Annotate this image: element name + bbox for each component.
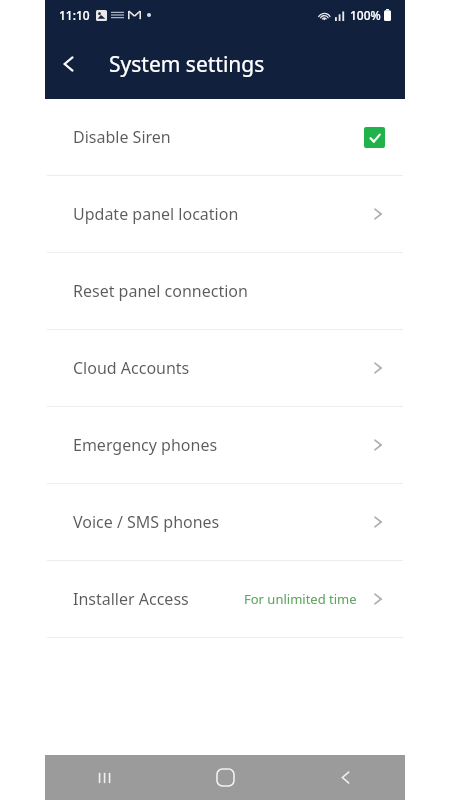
button[interactable]: Recent apps bbox=[45, 755, 165, 800]
staticText: System settings bbox=[109, 50, 265, 79]
staticText: Installer Access bbox=[73, 588, 189, 610]
staticText: For unlimited time bbox=[244, 590, 357, 608]
button[interactable]: Voice / SMS phones bbox=[45, 484, 405, 560]
staticText: Reset panel connection bbox=[73, 280, 248, 302]
button[interactable]: Back bbox=[45, 34, 93, 94]
button[interactable]: Home bbox=[165, 755, 285, 800]
staticText: Voice / SMS phones bbox=[73, 511, 220, 533]
staticText: Update panel location bbox=[73, 203, 239, 225]
button[interactable]: Reset panel connection bbox=[45, 253, 405, 329]
other: Disable Siren checkbox bbox=[364, 127, 385, 148]
button[interactable]: Disable Siren bbox=[45, 99, 405, 175]
button[interactable]: Emergency phones bbox=[45, 407, 405, 483]
button[interactable]: Update panel location bbox=[45, 176, 405, 252]
staticText: 11:10 bbox=[59, 7, 90, 23]
staticText: 100% bbox=[350, 7, 381, 23]
staticText: Disable Siren bbox=[73, 126, 171, 148]
button[interactable]: Cloud Accounts bbox=[45, 330, 405, 406]
button[interactable]: Installer Access bbox=[45, 561, 405, 637]
staticText: Cloud Accounts bbox=[73, 357, 190, 379]
staticText: Emergency phones bbox=[73, 434, 218, 456]
button[interactable]: Back bbox=[285, 755, 405, 800]
